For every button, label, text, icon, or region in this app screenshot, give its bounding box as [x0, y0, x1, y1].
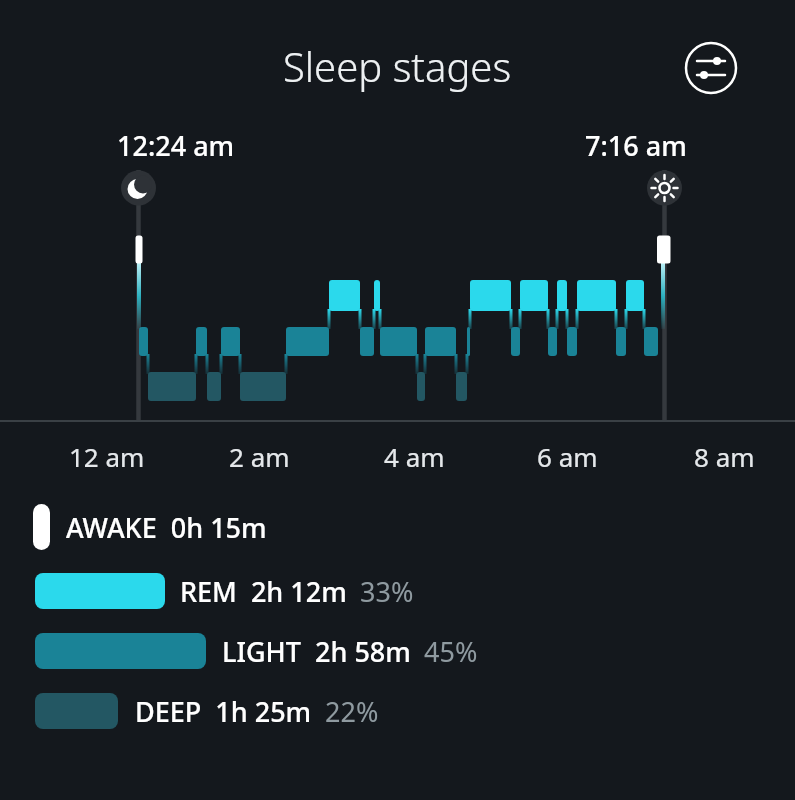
staticText: 12:24 am [117, 127, 235, 164]
staticText: DEEP 1h 25m [135, 693, 312, 730]
staticText: 6 am [537, 439, 598, 474]
staticText: 7:16 am [585, 127, 687, 164]
staticText: LIGHT 2h 58m [222, 633, 411, 670]
button[interactable]: REM 2h 12m [0, 567, 795, 615]
button[interactable]: LIGHT 2h 58m [0, 627, 795, 675]
staticText: 12 am [69, 439, 145, 474]
staticText: 4 am [384, 439, 445, 474]
staticText: 8 am [694, 439, 755, 474]
button[interactable]: AWAKE 0h 15m [0, 498, 795, 556]
button[interactable]: DEEP 1h 25m [0, 687, 795, 735]
staticText: 33% [360, 573, 414, 610]
staticText: Sleep stages [283, 39, 512, 93]
staticText: REM 2h 12m [180, 573, 347, 610]
staticText: 45% [424, 633, 478, 670]
staticText: 2 am [229, 439, 290, 474]
staticText: 22% [325, 693, 379, 730]
button[interactable] [683, 40, 739, 96]
staticText: AWAKE 0h 15m [66, 509, 267, 546]
